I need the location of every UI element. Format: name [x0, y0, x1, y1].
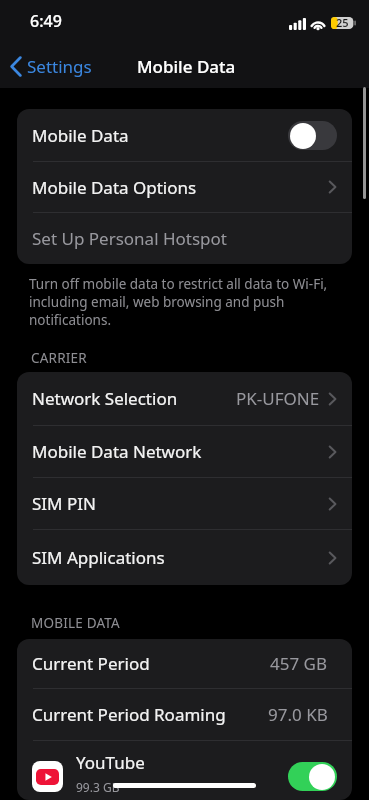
staticText: Settings — [27, 55, 92, 78]
staticText: Set Up Personal Hotspot — [32, 227, 227, 250]
staticText: Current Period Roaming — [32, 703, 226, 726]
button[interactable]: Settings — [0, 44, 102, 88]
staticText: SIM PIN — [32, 492, 96, 515]
button[interactable]: On — [288, 762, 337, 791]
button[interactable]: Current Period Roaming — [17, 689, 352, 740]
button[interactable]: Mobile Data — [17, 109, 352, 161]
staticText: Turn off mobile data to restrict all dat… — [29, 275, 339, 329]
button[interactable]: SIM Applications — [17, 530, 352, 585]
staticText: 25 — [336, 15, 349, 30]
staticText: 457 GB — [270, 652, 328, 675]
staticText: Network Selection — [32, 387, 178, 410]
staticText: PK-UFONE — [236, 387, 320, 410]
staticText: 6:49 — [30, 10, 62, 32]
button[interactable]: SIM PIN — [17, 478, 352, 529]
staticText: Mobile Data — [137, 55, 236, 78]
button[interactable]: Mobile Data Network — [17, 426, 352, 477]
button[interactable]: YouTube — [17, 741, 352, 800]
staticText: 97.0 KB — [268, 703, 328, 726]
staticText: CARRIER — [31, 349, 87, 367]
button[interactable]: Network Selection — [17, 372, 352, 425]
button[interactable]: Set Up Personal Hotspot — [17, 213, 352, 264]
staticText: MOBILE DATA — [31, 614, 120, 632]
staticText: Mobile Data Network — [32, 440, 202, 463]
staticText: YouTube — [76, 751, 145, 774]
staticText: Mobile Data Options — [32, 176, 197, 199]
staticText: Mobile Data — [32, 124, 129, 147]
staticText: Current Period — [32, 652, 150, 675]
button[interactable]: Off — [288, 121, 337, 150]
button[interactable]: Current Period — [17, 639, 352, 688]
button[interactable]: Mobile Data Options — [17, 162, 352, 212]
staticText: SIM Applications — [32, 546, 165, 569]
staticText: 99.3 GB — [76, 779, 120, 795]
